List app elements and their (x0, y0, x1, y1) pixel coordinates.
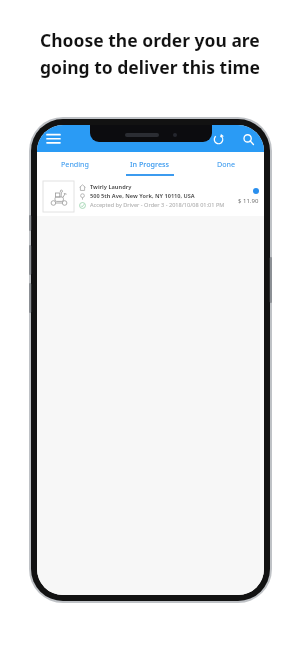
staticText: Done (217, 159, 236, 169)
button[interactable]: Search (237, 128, 259, 150)
button[interactable]: Done (188, 152, 264, 176)
staticText: Accepted by Driver - Order 3 - 2018/10/0… (90, 201, 225, 209)
button[interactable]: Menu (42, 128, 64, 150)
button[interactable]: In Progress (112, 152, 188, 176)
staticText: Pending (61, 159, 89, 169)
button[interactable]: Twirly Laundry (37, 176, 264, 216)
staticText: Twirly Laundry (90, 183, 132, 191)
button[interactable]: Refresh (207, 128, 229, 150)
staticText: 500 5th Ave, New York, NY 10110, USA (90, 192, 195, 200)
staticText: Choose the order you are (40, 28, 260, 52)
staticText: going to deliver this time (40, 55, 260, 79)
staticText: $ 11.90 (238, 197, 259, 205)
button[interactable]: Pending (37, 152, 112, 176)
staticText: In Progress (130, 159, 170, 169)
